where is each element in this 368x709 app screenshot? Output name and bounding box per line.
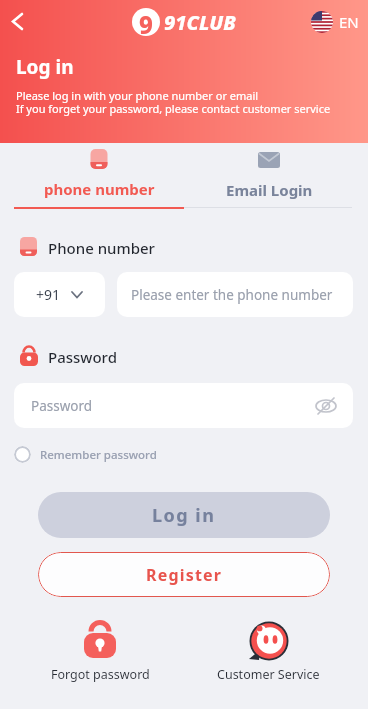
staticText: +91 xyxy=(36,285,61,304)
staticText: Password xyxy=(31,397,93,415)
button[interactable]: Please enter the phone number xyxy=(117,272,353,317)
staticText: Email Login xyxy=(226,180,313,200)
button[interactable]: EN xyxy=(311,11,359,33)
staticText: Customer Service xyxy=(217,666,320,683)
staticText: Log in xyxy=(152,503,216,528)
staticText: Phone number xyxy=(48,238,155,258)
staticText: Password xyxy=(48,347,117,367)
staticText: Please enter the phone number xyxy=(131,286,333,304)
staticText: Log in xyxy=(16,54,74,80)
button[interactable]: Register xyxy=(38,552,330,597)
staticText: 91CLUB xyxy=(164,9,236,36)
button[interactable]: phone number xyxy=(14,149,184,207)
staticText: EN xyxy=(339,12,359,32)
button[interactable]: Password xyxy=(14,383,353,428)
staticText: Remember password xyxy=(40,447,157,463)
button[interactable]: Log in xyxy=(38,492,330,538)
staticText: phone number xyxy=(44,179,155,199)
button[interactable]: Customer Service xyxy=(198,620,338,688)
staticText: Please log in with your phone number or … xyxy=(16,88,259,103)
button[interactable]: Remember password xyxy=(14,446,157,463)
staticText: 9 xyxy=(139,8,153,36)
button[interactable] xyxy=(4,7,34,37)
staticText: Register xyxy=(146,564,223,586)
staticText: If you forget your password, please cont… xyxy=(16,101,331,116)
staticText: Forgot password xyxy=(51,666,150,683)
button[interactable]: Forgot password xyxy=(30,620,170,688)
button[interactable]: Email Login xyxy=(184,149,354,207)
button[interactable]: +91 xyxy=(14,272,105,317)
